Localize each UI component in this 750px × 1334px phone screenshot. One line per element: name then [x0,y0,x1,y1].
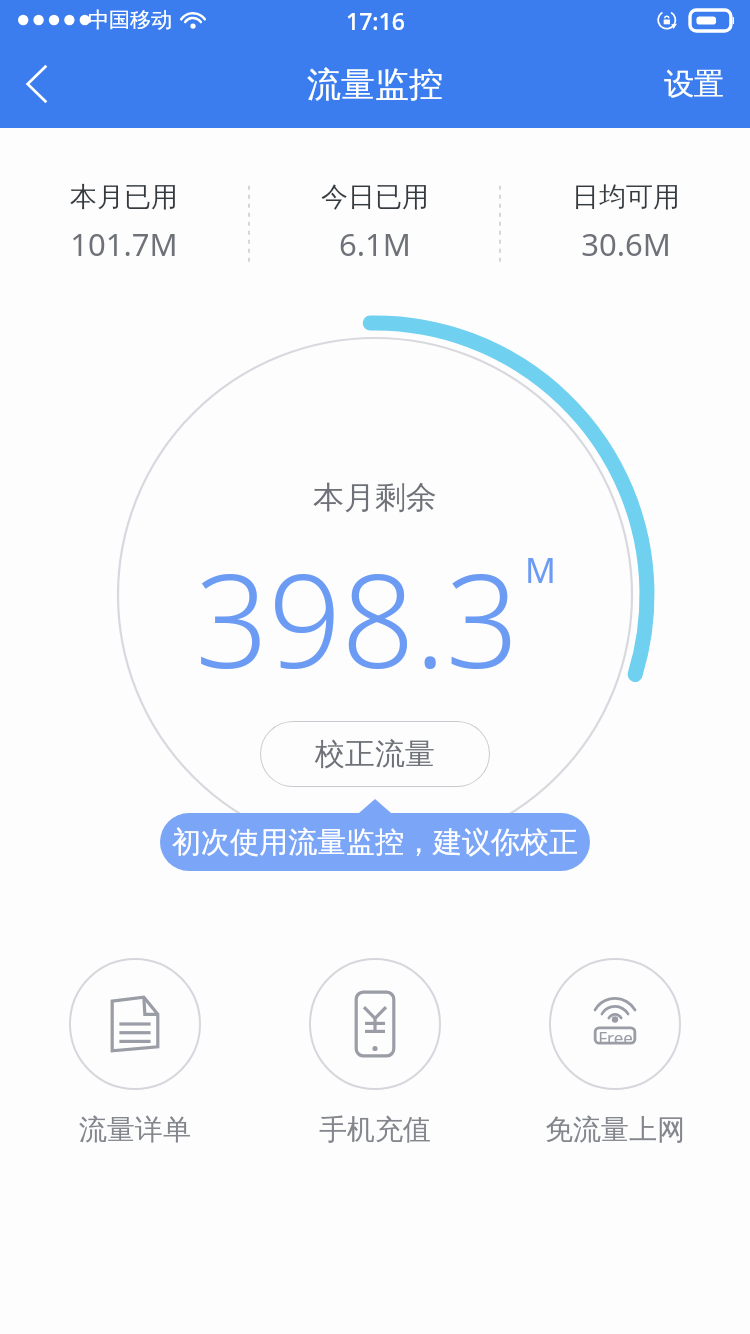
staticText: 手机充值 [319,1112,431,1147]
button[interactable]: 本月已用 [0,180,248,265]
staticText: 6.1M [339,223,411,265]
staticText: 流量详单 [79,1112,191,1147]
staticText: M [525,547,556,593]
staticText: 免流量上网 [545,1112,685,1147]
button[interactable]: 流量详单 [30,958,240,1147]
staticText: 今日已用 [321,180,429,214]
staticText: 本月剩余 [313,478,437,517]
staticText: 初次使用流量监控，建议你校正 [172,824,578,861]
staticText: 设置 [664,65,724,103]
button[interactable]: 手机充值 [270,958,480,1147]
button[interactable]: 初次使用流量监控，建议你校正 [160,799,590,871]
staticText: 校正流量 [315,735,435,773]
staticText: 本月已用 [70,180,178,214]
staticText: 流量监控 [307,63,443,106]
button[interactable]: 日均可用 [501,180,750,265]
staticText: 17:16 [346,5,405,36]
button[interactable]: 今日已用 [250,180,499,265]
staticText: 101.7M [70,223,178,265]
staticText: 日均可用 [572,180,680,214]
staticText: Free [598,1026,633,1049]
staticText: 398.3 [195,531,519,705]
staticText: 30.6M [581,223,671,265]
button[interactable]: 设置 [638,40,750,128]
button[interactable]: 校正流量 [260,721,490,787]
button[interactable]: 返回 [0,40,74,128]
button[interactable]: Free [510,958,720,1147]
staticText: 中国移动 [88,7,172,33]
